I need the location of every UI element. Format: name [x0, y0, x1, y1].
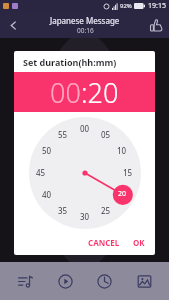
staticText: 40 — [42, 189, 52, 200]
staticText: 30 — [80, 211, 90, 222]
staticText: OK — [133, 237, 145, 248]
button[interactable]: Like — [143, 12, 169, 38]
button[interactable]: :20 — [81, 74, 119, 111]
button[interactable]: Playlist — [10, 266, 40, 296]
button[interactable]: Photos — [129, 266, 159, 296]
staticText: CANCEL — [88, 237, 120, 248]
staticText: 00:16 — [77, 26, 94, 35]
staticText: Set duration(hh:mm) — [23, 56, 117, 68]
staticText: 00 — [80, 123, 90, 134]
button[interactable]: OK — [130, 234, 148, 251]
button[interactable]: CANCEL — [85, 234, 123, 251]
staticText: 05 — [101, 129, 111, 140]
staticText: 25 — [101, 205, 111, 216]
button[interactable]: Play — [50, 266, 80, 296]
staticText: 35 — [58, 205, 68, 216]
staticText: 45 — [36, 167, 46, 178]
staticText: 19:15 — [148, 1, 166, 11]
staticText: 50 — [42, 145, 52, 156]
staticText: 15 — [123, 167, 133, 178]
staticText: Japanese Message — [50, 15, 120, 26]
button[interactable]: 00 — [50, 74, 81, 111]
staticText: 92% — [120, 2, 132, 10]
button[interactable]: Back — [0, 12, 26, 38]
button[interactable]: Timer — [89, 266, 119, 296]
staticText: 20 — [118, 189, 127, 199]
staticText: 10 — [117, 145, 127, 156]
button[interactable]: Minute picker — [29, 117, 141, 229]
staticText: 55 — [58, 129, 68, 140]
